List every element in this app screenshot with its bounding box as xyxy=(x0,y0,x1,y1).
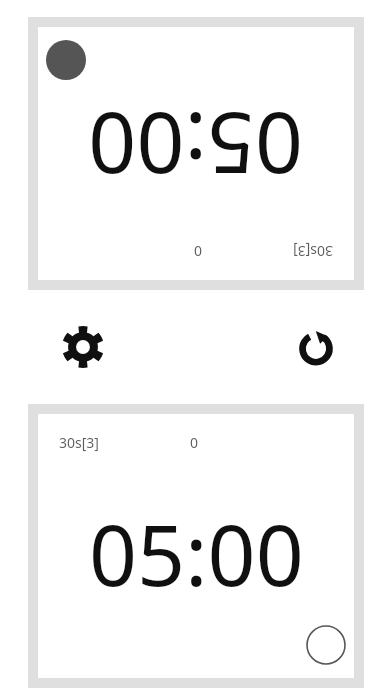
staticText: 30s[3] xyxy=(59,433,99,452)
staticText: 05:00 xyxy=(88,89,303,203)
staticText: 05:00 xyxy=(89,496,304,610)
button[interactable]: Reset xyxy=(286,317,346,377)
staticText: 0 xyxy=(190,433,199,452)
button[interactable]: Settings xyxy=(53,317,113,377)
staticText: 0 xyxy=(193,242,202,261)
button[interactable]: 30s[3] xyxy=(38,27,354,280)
button[interactable]: 30s[3] xyxy=(38,414,354,678)
staticText: 30s[3] xyxy=(293,242,333,261)
